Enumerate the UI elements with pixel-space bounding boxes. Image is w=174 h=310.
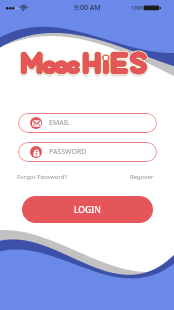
button[interactable]: Register: [130, 173, 154, 181]
staticText: LOGIN: [74, 204, 101, 216]
staticText: 9:00 AM: [74, 3, 101, 13]
staticText: PASSWORD: [49, 147, 87, 157]
button[interactable]: EMAIL: [18, 113, 157, 133]
button[interactable]: LOGIN: [22, 196, 153, 223]
staticText: EMAIL: [49, 118, 70, 128]
button[interactable]: Forgot Password?: [17, 173, 67, 181]
button[interactable]: PASSWORD: [18, 142, 157, 162]
staticText: 100%: [131, 4, 147, 12]
